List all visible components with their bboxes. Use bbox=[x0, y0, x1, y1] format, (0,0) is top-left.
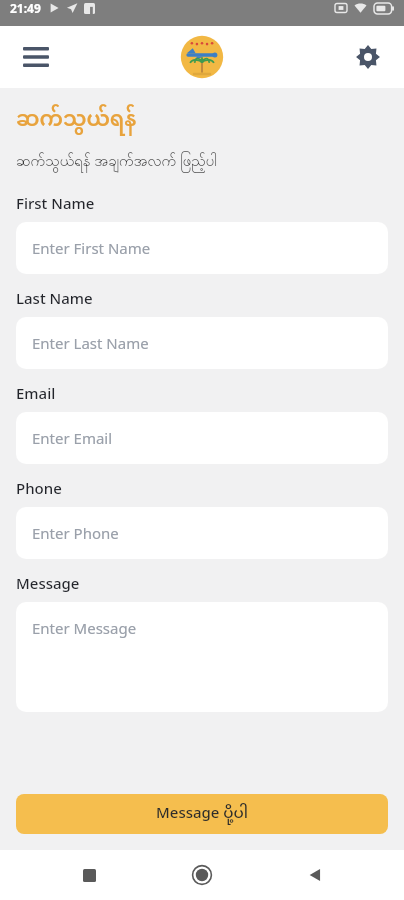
button[interactable]: Enter Last Name bbox=[16, 317, 388, 369]
staticText: Message ပို့ပါ bbox=[156, 798, 249, 831]
staticText: Message bbox=[16, 573, 80, 593]
staticText: Phone bbox=[16, 478, 62, 498]
button[interactable]: Home bbox=[178, 851, 226, 899]
button[interactable]: Enter Message bbox=[16, 602, 388, 712]
staticText: Enter Phone bbox=[32, 523, 119, 543]
button[interactable]: Back bbox=[291, 851, 339, 899]
staticText: Last Name bbox=[16, 288, 93, 308]
button[interactable]: Message ပို့ပါ bbox=[16, 794, 388, 834]
button[interactable]: Open navigation menu bbox=[14, 35, 58, 79]
button[interactable]: Settings bbox=[346, 35, 390, 79]
staticText: Email bbox=[16, 383, 56, 403]
button[interactable]: Recent apps bbox=[65, 851, 113, 899]
staticText: ဆက်သွယ်ရန် အချက်အလက် ဖြည့်ပါ bbox=[16, 150, 217, 173]
button[interactable]: Enter Email bbox=[16, 412, 388, 464]
button[interactable]: Enter Phone bbox=[16, 507, 388, 559]
staticText: Enter Last Name bbox=[32, 333, 149, 353]
staticText: Enter Email bbox=[32, 428, 113, 448]
staticText: ဆက်သွယ်ရန် bbox=[16, 98, 137, 144]
staticText: Enter First Name bbox=[32, 238, 151, 258]
staticText: Enter Message bbox=[32, 618, 137, 638]
button[interactable]: App logo bbox=[177, 32, 227, 82]
staticText: First Name bbox=[16, 193, 95, 213]
button[interactable]: Enter First Name bbox=[16, 222, 388, 274]
staticText: 21:49 bbox=[10, 0, 41, 16]
